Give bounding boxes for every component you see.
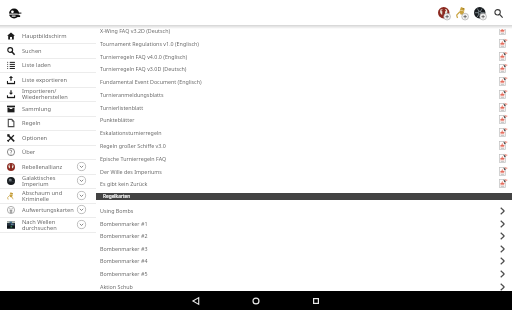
button[interactable]: Nach Wellen durchsuchen [0,217,96,233]
button[interactable]: Der Wille des Imperiums [96,165,512,178]
staticText: Galaktisches Imperium [22,174,74,188]
button[interactable]: Turnierregeln FAQ v3.0D (Deutsch) [96,62,512,75]
button[interactable]: Rebel Alliance [435,4,453,22]
button[interactable]: Epische Turnierregeln FAQ [96,152,512,165]
staticText: Der Wille des Imperiums [100,168,497,175]
button[interactable]: Punkteblätter [96,113,512,126]
staticText: Aktion Schub [100,283,497,290]
staticText: Hauptbildschirm [22,32,96,40]
staticText: Nach Wellen durchsuchen [22,218,74,232]
staticText: Abschaum und Kriminelle [22,189,74,203]
button[interactable]: Sammlung [0,101,96,117]
button[interactable]: Bombenmarker #3 [96,242,512,255]
staticText: Regeln großer Schiffe v3.0 [100,142,497,149]
staticText: Turnierregeln FAQ v4.0.0 (Englisch) [100,53,497,60]
button[interactable]: Bombenmarker #2 [96,229,512,242]
button[interactable]: Über [0,144,96,160]
staticText: Bombenmarker #4 [100,257,497,264]
staticText: Regelkarten [103,193,131,200]
staticText: Turnierregeln FAQ v3.0D (Deutsch) [100,65,497,72]
button[interactable]: Home [226,291,286,310]
button[interactable]: Suchen [0,43,96,59]
button[interactable]: Tournament Regulations v1.0 (Englisch) [96,37,512,50]
button[interactable]: Optionen [0,130,96,146]
button[interactable]: Galaktisches Imperium [0,173,96,189]
staticText: Fundamental Event Document (Englisch) [100,78,497,85]
staticText: Über [22,148,96,156]
staticText: Turnierlistenblatt [100,104,497,111]
staticText: Es gibt kein Zurück [100,180,497,187]
staticText: Tournament Regulations v1.0 (Englisch) [100,40,497,47]
button[interactable]: Liste exportieren [0,72,96,88]
staticText: Optionen [22,134,96,142]
button[interactable]: Aktion Schub [96,280,512,293]
button[interactable]: Recent apps [286,291,346,310]
button[interactable]: Turnierlistenblatt [96,101,512,114]
button[interactable]: Turnierregeln FAQ v4.0.0 (Englisch) [96,50,512,63]
staticText: Bombenmarker #2 [100,232,497,239]
staticText: Punkteblätter [100,116,497,123]
button[interactable]: Fundamental Event Document (Englisch) [96,75,512,88]
staticText: Suchen [22,47,96,55]
button[interactable]: Es gibt kein Zurück [96,177,512,190]
button[interactable]: Bombenmarker #4 [96,254,512,267]
button[interactable]: Abschaum und Kriminelle [0,188,96,204]
staticText: Bombenmarker #1 [100,220,497,227]
button[interactable]: Eskalationsturnierregeln [96,126,512,139]
staticText: Sammlung [22,105,96,113]
staticText: Liste laden [22,61,96,69]
button[interactable]: Galactic Empire [471,4,489,22]
staticText: Liste exportieren [22,76,96,84]
button[interactable]: Back [166,291,226,310]
button[interactable]: X-Wing FAQ v3.2D (Deutsch) [96,24,512,37]
staticText: Bombenmarker #3 [100,245,497,252]
staticText: Turnieranmeldungsblatts [100,91,497,98]
staticText: Eskalationsturnierregeln [100,129,497,136]
staticText: Aufwertungskarten [22,206,74,214]
button[interactable]: Aufwertungskarten [0,202,96,218]
button[interactable]: Liste laden [0,57,96,73]
button[interactable]: Importieren/ Wiederherstellen [0,86,96,102]
button[interactable]: Rebellenallianz [0,159,96,175]
button[interactable]: Regeln großer Schiffe v3.0 [96,139,512,152]
button[interactable]: Using Bombs [96,204,512,217]
staticText: Importieren/ Wiederherstellen [22,87,96,101]
button[interactable]: Hauptbildschirm [0,28,96,44]
staticText: Bombenmarker #5 [100,270,497,277]
button[interactable]: Scum and Villainy [453,4,471,22]
button[interactable]: Bombenmarker #1 [96,217,512,230]
staticText: Rebellenallianz [22,163,74,171]
button[interactable]: Open navigation menu [5,4,23,22]
button[interactable]: Regeln [0,115,96,131]
button[interactable]: Turnieranmeldungsblatts [96,88,512,101]
staticText: X-Wing FAQ v3.2D (Deutsch) [100,27,497,34]
button[interactable]: Search [489,4,507,22]
staticText: Using Bombs [100,207,497,214]
button[interactable]: Bombenmarker #5 [96,267,512,280]
staticText: Regeln [22,119,96,127]
staticText: Epische Turnierregeln FAQ [100,155,497,162]
